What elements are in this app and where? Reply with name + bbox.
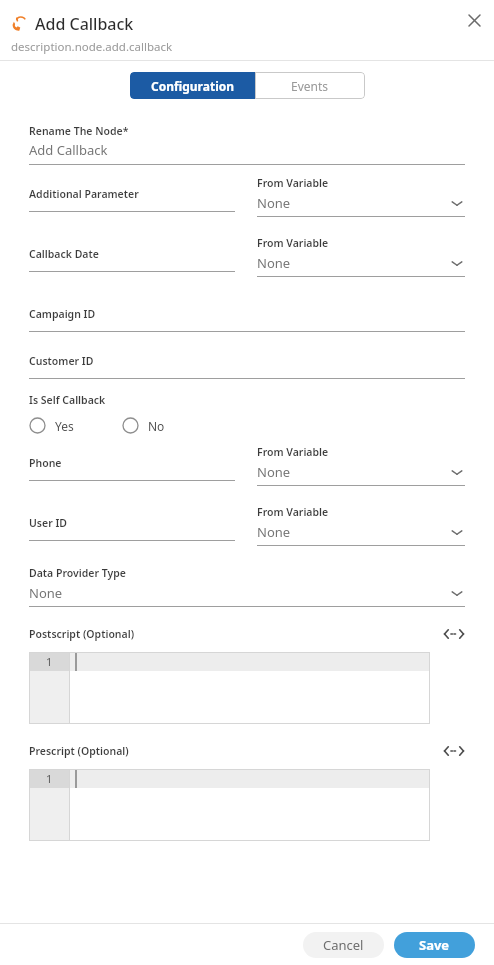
button[interactable]: Cancel: [303, 932, 384, 958]
button[interactable]: 1: [29, 652, 430, 724]
staticText: 1: [46, 654, 53, 669]
button[interactable]: Expand code editor: [443, 627, 465, 641]
staticText: 1: [46, 771, 53, 786]
staticText: Yes: [55, 418, 74, 434]
staticText: description.node.add.callback: [11, 39, 173, 55]
staticText: None: [257, 254, 291, 272]
button[interactable]: Customer ID: [29, 332, 465, 379]
staticText: Prescript (Optional): [29, 744, 129, 758]
staticText: From Variable: [257, 445, 329, 459]
button[interactable]: Yes: [29, 417, 74, 434]
button[interactable]: From Variable: [257, 505, 465, 546]
button[interactable]: Save: [394, 932, 475, 958]
button[interactable]: User ID: [29, 494, 235, 541]
staticText: None: [257, 523, 291, 541]
staticText: None: [257, 194, 291, 212]
staticText: Phone: [29, 456, 62, 470]
button[interactable]: Rename The Node*: [29, 124, 465, 165]
staticText: From Variable: [257, 236, 329, 250]
staticText: User ID: [29, 516, 68, 530]
staticText: Save: [419, 936, 450, 954]
staticText: Additional Parameter: [29, 187, 139, 201]
staticText: Is Self Callback: [29, 393, 106, 407]
staticText: From Variable: [257, 176, 329, 190]
button[interactable]: 1: [29, 769, 430, 841]
staticText: Postscript (Optional): [29, 627, 135, 641]
staticText: Add Callback: [35, 13, 134, 35]
staticText: Cancel: [323, 936, 364, 954]
button[interactable]: Data Provider Type: [29, 566, 465, 607]
button[interactable]: Events: [255, 72, 365, 99]
button[interactable]: From Variable: [257, 445, 465, 486]
staticText: None: [29, 584, 63, 602]
staticText: Campaign ID: [29, 307, 96, 321]
button[interactable]: From Variable: [257, 236, 465, 277]
staticText: None: [257, 463, 291, 481]
button[interactable]: Expand code editor: [443, 744, 465, 758]
staticText: No: [148, 418, 165, 434]
button[interactable]: Additional Parameter: [29, 165, 235, 212]
staticText: Add Callback: [29, 141, 108, 159]
staticText: Events: [291, 78, 329, 94]
staticText: Callback Date: [29, 247, 99, 261]
button[interactable]: From Variable: [257, 176, 465, 217]
button[interactable]: Phone: [29, 434, 235, 481]
button[interactable]: Campaign ID: [29, 285, 465, 332]
button[interactable]: Configuration: [130, 72, 255, 99]
staticText: From Variable: [257, 505, 329, 519]
button[interactable]: Close: [462, 8, 486, 32]
button[interactable]: Callback Date: [29, 225, 235, 272]
staticText: Rename The Node*: [29, 124, 129, 138]
button[interactable]: No: [122, 417, 165, 434]
staticText: Configuration: [151, 78, 235, 94]
staticText: Data Provider Type: [29, 566, 126, 580]
staticText: Customer ID: [29, 354, 94, 368]
